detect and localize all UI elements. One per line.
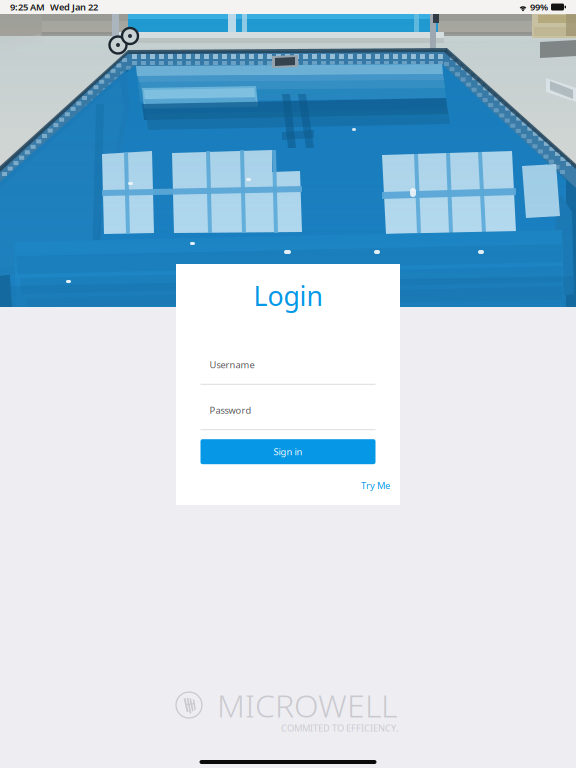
staticText: Wed Jan 22 [50, 1, 98, 13]
staticText: COMMITED TO EFFICIENCY. [281, 722, 399, 734]
staticText: 9:25 AM [10, 1, 45, 13]
staticText: Password [209, 404, 251, 416]
staticText: Username [209, 358, 254, 371]
staticText: 99% [530, 1, 548, 13]
button[interactable]: Sign in [200, 439, 375, 464]
staticText: MICROWELL [217, 684, 397, 726]
button[interactable]: Try Me [361, 479, 390, 492]
staticText: Try Me [361, 479, 390, 492]
staticText: Login [253, 278, 322, 313]
staticText: Sign in [273, 445, 302, 458]
